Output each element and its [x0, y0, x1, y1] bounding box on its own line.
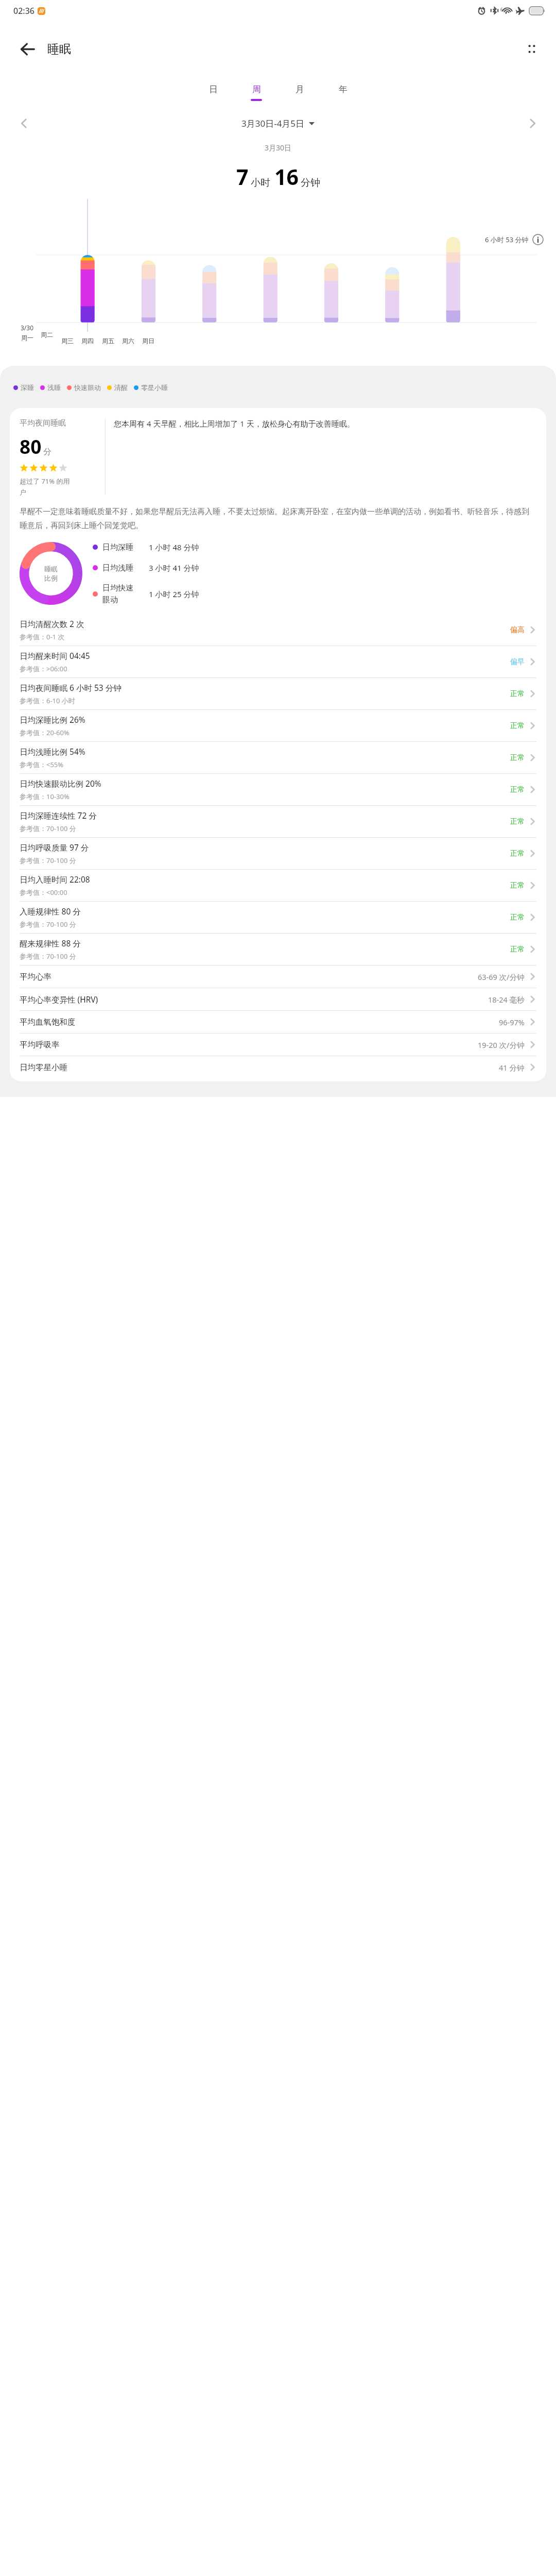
staticText: 日均呼吸质量 97 分 [20, 842, 89, 853]
staticText: 比例 [44, 574, 58, 582]
staticText: 偏早 [510, 657, 525, 667]
staticText: 月 [296, 84, 304, 95]
staticText: 分 [43, 447, 51, 457]
staticText: 正常 [510, 753, 525, 762]
button[interactable]: 说明 [532, 234, 544, 245]
staticText: 零星小睡 [141, 383, 168, 392]
staticText: 睡眠 [47, 42, 71, 57]
staticText: 19-20 次/分钟 [478, 1040, 525, 1050]
button[interactable]: 日均夜间睡眠 6 小时 53 分钟 [10, 678, 546, 709]
staticText: 3月30日-4月5日 [241, 117, 305, 129]
staticText: 正常 [510, 785, 525, 794]
staticText: 入睡规律性 80 分 [20, 906, 81, 917]
staticText: 1 小时 25 分钟 [149, 589, 199, 599]
staticText: 周 [252, 84, 261, 95]
staticText: 6 小时 53 分钟 [485, 235, 529, 244]
staticText: 快速眼动 [74, 383, 101, 392]
staticText: 周三 [61, 337, 74, 345]
staticText: 日均夜间睡眠 6 小时 53 分钟 [20, 682, 121, 693]
staticText: 周五 [102, 337, 114, 345]
staticText: 63-69 次/分钟 [478, 972, 525, 982]
staticText: 96-97% [499, 1017, 525, 1027]
button[interactable]: 平均血氧饱和度 [10, 1011, 546, 1033]
staticText: 超过了 71% 的用 户 [20, 477, 70, 497]
staticText: 周日 [142, 337, 154, 345]
button[interactable]: 日均清醒次数 2 次 [10, 614, 546, 646]
staticText: 正常 [510, 945, 525, 954]
staticText: 您本周有 4 天早醒，相比上周增加了 1 天，放松身心有助于改善睡眠。 [114, 418, 355, 429]
staticText: 日均浅睡 [102, 563, 133, 573]
staticText: 正常 [510, 817, 525, 826]
button[interactable]: 上一周 [11, 111, 36, 135]
staticText: 3/30 [21, 324, 34, 332]
staticText: 日均清醒次数 2 次 [20, 618, 84, 629]
button[interactable]: 平均心率变异性 (HRV) [10, 988, 546, 1010]
staticText: 周四 [81, 337, 94, 345]
staticText: 日均浅睡比例 54% [20, 746, 85, 757]
staticText: 清醒 [114, 383, 128, 392]
staticText: 16 [274, 162, 299, 191]
button[interactable]: 日均深睡连续性 72 分 [10, 806, 546, 837]
staticText: 7 [236, 162, 249, 191]
button[interactable]: 返回 [13, 35, 41, 63]
staticText: 正常 [510, 689, 525, 699]
staticText: 参考值：0-1 次 [20, 632, 65, 641]
staticText: 参考值：20-60% [20, 728, 69, 737]
staticText: 参考值：70-100 分 [20, 952, 76, 961]
button[interactable]: 更多选项 [518, 35, 546, 63]
staticText: 正常 [510, 849, 525, 858]
staticText: 日均深睡比例 26% [20, 714, 85, 725]
staticText: 3 小时 41 分钟 [149, 563, 199, 573]
button[interactable]: 日 [198, 77, 228, 108]
staticText: 1 小时 48 分钟 [149, 542, 199, 552]
staticText: 分钟 [301, 177, 320, 189]
staticText: 参考值：10-30% [20, 792, 69, 801]
staticText: 41 分钟 [499, 1062, 525, 1073]
staticText: 醒来规律性 88 分 [20, 938, 81, 948]
staticText: 睡眠 [44, 565, 58, 573]
staticText: 日均零星小睡 [20, 1062, 67, 1073]
button[interactable]: 醒来规律性 88 分 [10, 934, 546, 965]
staticText: 参考值：70-100 分 [20, 856, 76, 865]
staticText: 平均心率 [20, 972, 51, 982]
staticText: 平均心率变异性 (HRV) [20, 994, 98, 1005]
button[interactable]: 日均入睡时间 22:08 [10, 870, 546, 901]
button[interactable]: 下一周 [520, 111, 545, 135]
staticText: 正常 [510, 881, 525, 890]
button[interactable]: 周 [241, 77, 271, 108]
staticText: 日均深睡 [102, 543, 133, 552]
button[interactable]: 日均醒来时间 04:45 [10, 646, 546, 677]
button[interactable]: 年 [328, 77, 358, 108]
staticText: 平均血氧饱和度 [20, 1017, 76, 1027]
staticText: 3月30日 [265, 143, 292, 152]
button[interactable]: 入睡规律性 80 分 [10, 902, 546, 933]
button[interactable]: 月 [285, 77, 315, 108]
button[interactable]: 日均深睡比例 26% [10, 710, 546, 741]
staticText: 周一 [21, 334, 33, 342]
staticText: 6 [500, 7, 503, 12]
staticText: 平均呼吸率 [20, 1040, 60, 1050]
button[interactable]: 日均呼吸质量 97 分 [10, 838, 546, 869]
staticText: 正常 [510, 913, 525, 922]
button[interactable]: 平均心率 [10, 965, 546, 988]
staticText: 日均快速 眼动 [102, 583, 133, 605]
staticText: 18-24 毫秒 [488, 994, 525, 1005]
button[interactable]: 日均浅睡比例 54% [10, 742, 546, 773]
staticText: 小时 [251, 177, 270, 189]
staticText: 浅睡 [47, 383, 61, 392]
staticText: 早醒不一定意味着睡眠质量不好，如果您早醒后无法再入睡，不要太过烦恼。起床离开卧室… [20, 507, 536, 531]
staticText: 日均深睡连续性 72 分 [20, 810, 97, 821]
button[interactable]: 3月30日-4月5日 [241, 117, 315, 129]
staticText: 参考值：<55% [20, 760, 64, 769]
staticText: 日均快速眼动比例 20% [20, 778, 101, 789]
staticText: 参考值：<00:00 [20, 888, 67, 897]
button[interactable]: 平均呼吸率 [10, 1033, 546, 1056]
staticText: 日均醒来时间 04:45 [20, 650, 90, 661]
staticText: 深睡 [21, 383, 34, 392]
staticText: 参考值：70-100 分 [20, 824, 76, 833]
staticText: 正常 [510, 721, 525, 731]
staticText: 偏高 [510, 625, 525, 635]
staticText: 年 [339, 84, 347, 95]
button[interactable]: 日均快速眼动比例 20% [10, 774, 546, 805]
button[interactable]: 日均零星小睡 [10, 1056, 546, 1078]
